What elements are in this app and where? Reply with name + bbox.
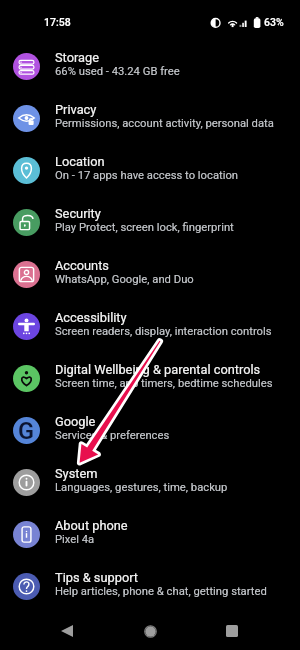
staticText: Accessibility xyxy=(55,310,127,325)
staticText: Privacy xyxy=(55,102,97,117)
button[interactable]: Home xyxy=(123,612,177,650)
staticText: 63% xyxy=(264,16,284,28)
button[interactable]: Recent apps xyxy=(205,612,259,650)
staticText: Google xyxy=(55,414,96,429)
button[interactable]: About phone xyxy=(0,508,300,560)
staticText: Play Protect, screen lock, fingerprint xyxy=(55,221,234,234)
staticText: Screen readers, display, interaction con… xyxy=(55,325,272,338)
staticText: Accounts xyxy=(55,258,109,273)
staticText: Location xyxy=(55,154,105,169)
staticText: Services & preferences xyxy=(55,429,170,442)
staticText: About phone xyxy=(55,518,128,533)
staticText: Help articles, phone & chat, getting sta… xyxy=(55,585,267,598)
staticText: Tips & support xyxy=(55,570,139,585)
button[interactable]: Accessibility xyxy=(0,300,300,352)
staticText: Security xyxy=(55,206,101,221)
staticText: Storage xyxy=(55,50,99,65)
staticText: System xyxy=(55,466,98,481)
button[interactable]: Tips & support xyxy=(0,560,300,612)
staticText: 17:58 xyxy=(44,16,71,28)
staticText: 66% used - 43.24 GB free xyxy=(55,65,180,78)
staticText: WhatsApp, Google, and Duo xyxy=(55,273,194,286)
button[interactable]: Back xyxy=(40,612,94,650)
staticText: Permissions, account activity, personal … xyxy=(55,117,274,130)
staticText: On - 17 apps have access to location xyxy=(55,169,239,182)
button[interactable]: G xyxy=(0,404,300,456)
button[interactable]: Digital Wellbeing & parental controls xyxy=(0,352,300,404)
staticText: Pixel 4a xyxy=(55,533,95,546)
button[interactable]: Location xyxy=(0,144,300,196)
staticText: G xyxy=(18,417,35,444)
button[interactable]: Privacy xyxy=(0,92,300,144)
button[interactable]: Storage xyxy=(0,40,300,92)
staticText: Digital Wellbeing & parental controls xyxy=(55,362,261,377)
button[interactable]: System xyxy=(0,456,300,508)
button[interactable]: Accounts xyxy=(0,248,300,300)
staticText: Screen time, app timers, bedtime schedul… xyxy=(55,377,273,390)
staticText: Languages, gestures, time, backup xyxy=(55,481,228,494)
button[interactable]: Security xyxy=(0,196,300,248)
